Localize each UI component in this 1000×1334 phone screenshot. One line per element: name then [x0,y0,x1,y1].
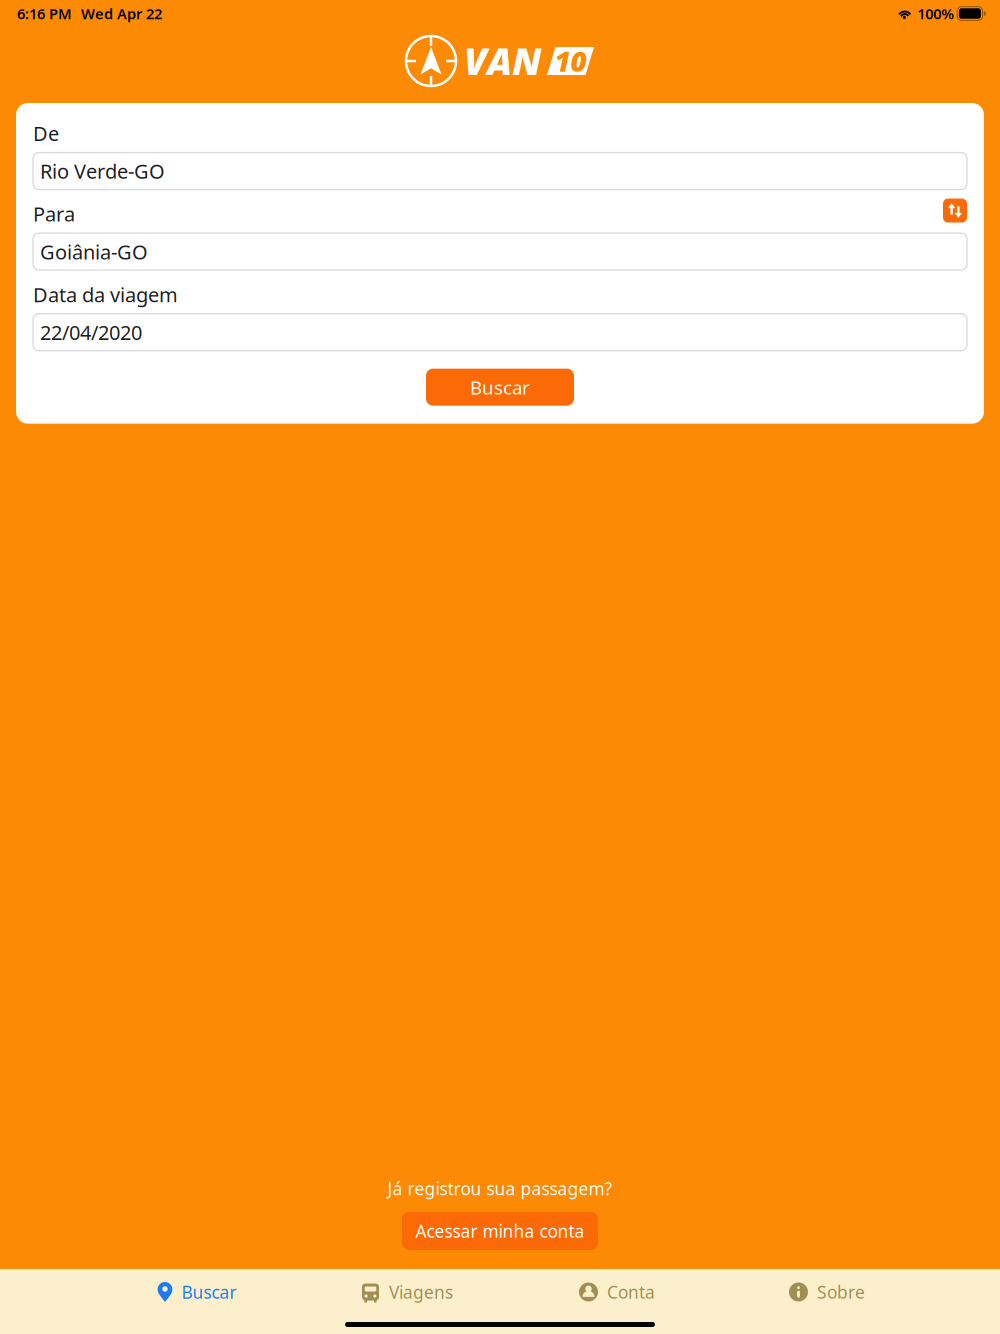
staticText: Viagens [389,1280,453,1303]
staticText: 6:16 PM [17,4,72,23]
staticText: Goiânia-GO [40,238,148,265]
button[interactable]: Inverter origem e destino [943,199,967,223]
staticText: Conta [607,1280,655,1303]
staticText: 10 [554,42,586,80]
staticText: 100% [917,4,954,23]
staticText: Já registrou sua passagem? [387,1177,612,1200]
staticText: Wed Apr 22 [81,4,162,23]
staticText: Para [33,201,75,227]
staticText: Data da viagem [33,281,178,308]
button[interactable]: Conta [500,1269,710,1315]
button[interactable]: Viagens [290,1269,500,1315]
staticText: Rio Verde-GO [40,158,165,184]
staticText: Sobre [817,1280,865,1303]
button[interactable]: Acessar minha conta [402,1212,598,1250]
staticText: Buscar [470,375,530,400]
button[interactable]: Buscar [80,1269,290,1315]
staticText: De [33,120,59,147]
button[interactable]: Sobre [710,1269,920,1315]
staticText: Buscar [181,1280,236,1303]
button[interactable]: Buscar [426,369,574,406]
staticText: VAN [464,36,541,86]
staticText: 22/04/2020 [40,319,142,345]
staticText: Acessar minha conta [415,1219,584,1242]
